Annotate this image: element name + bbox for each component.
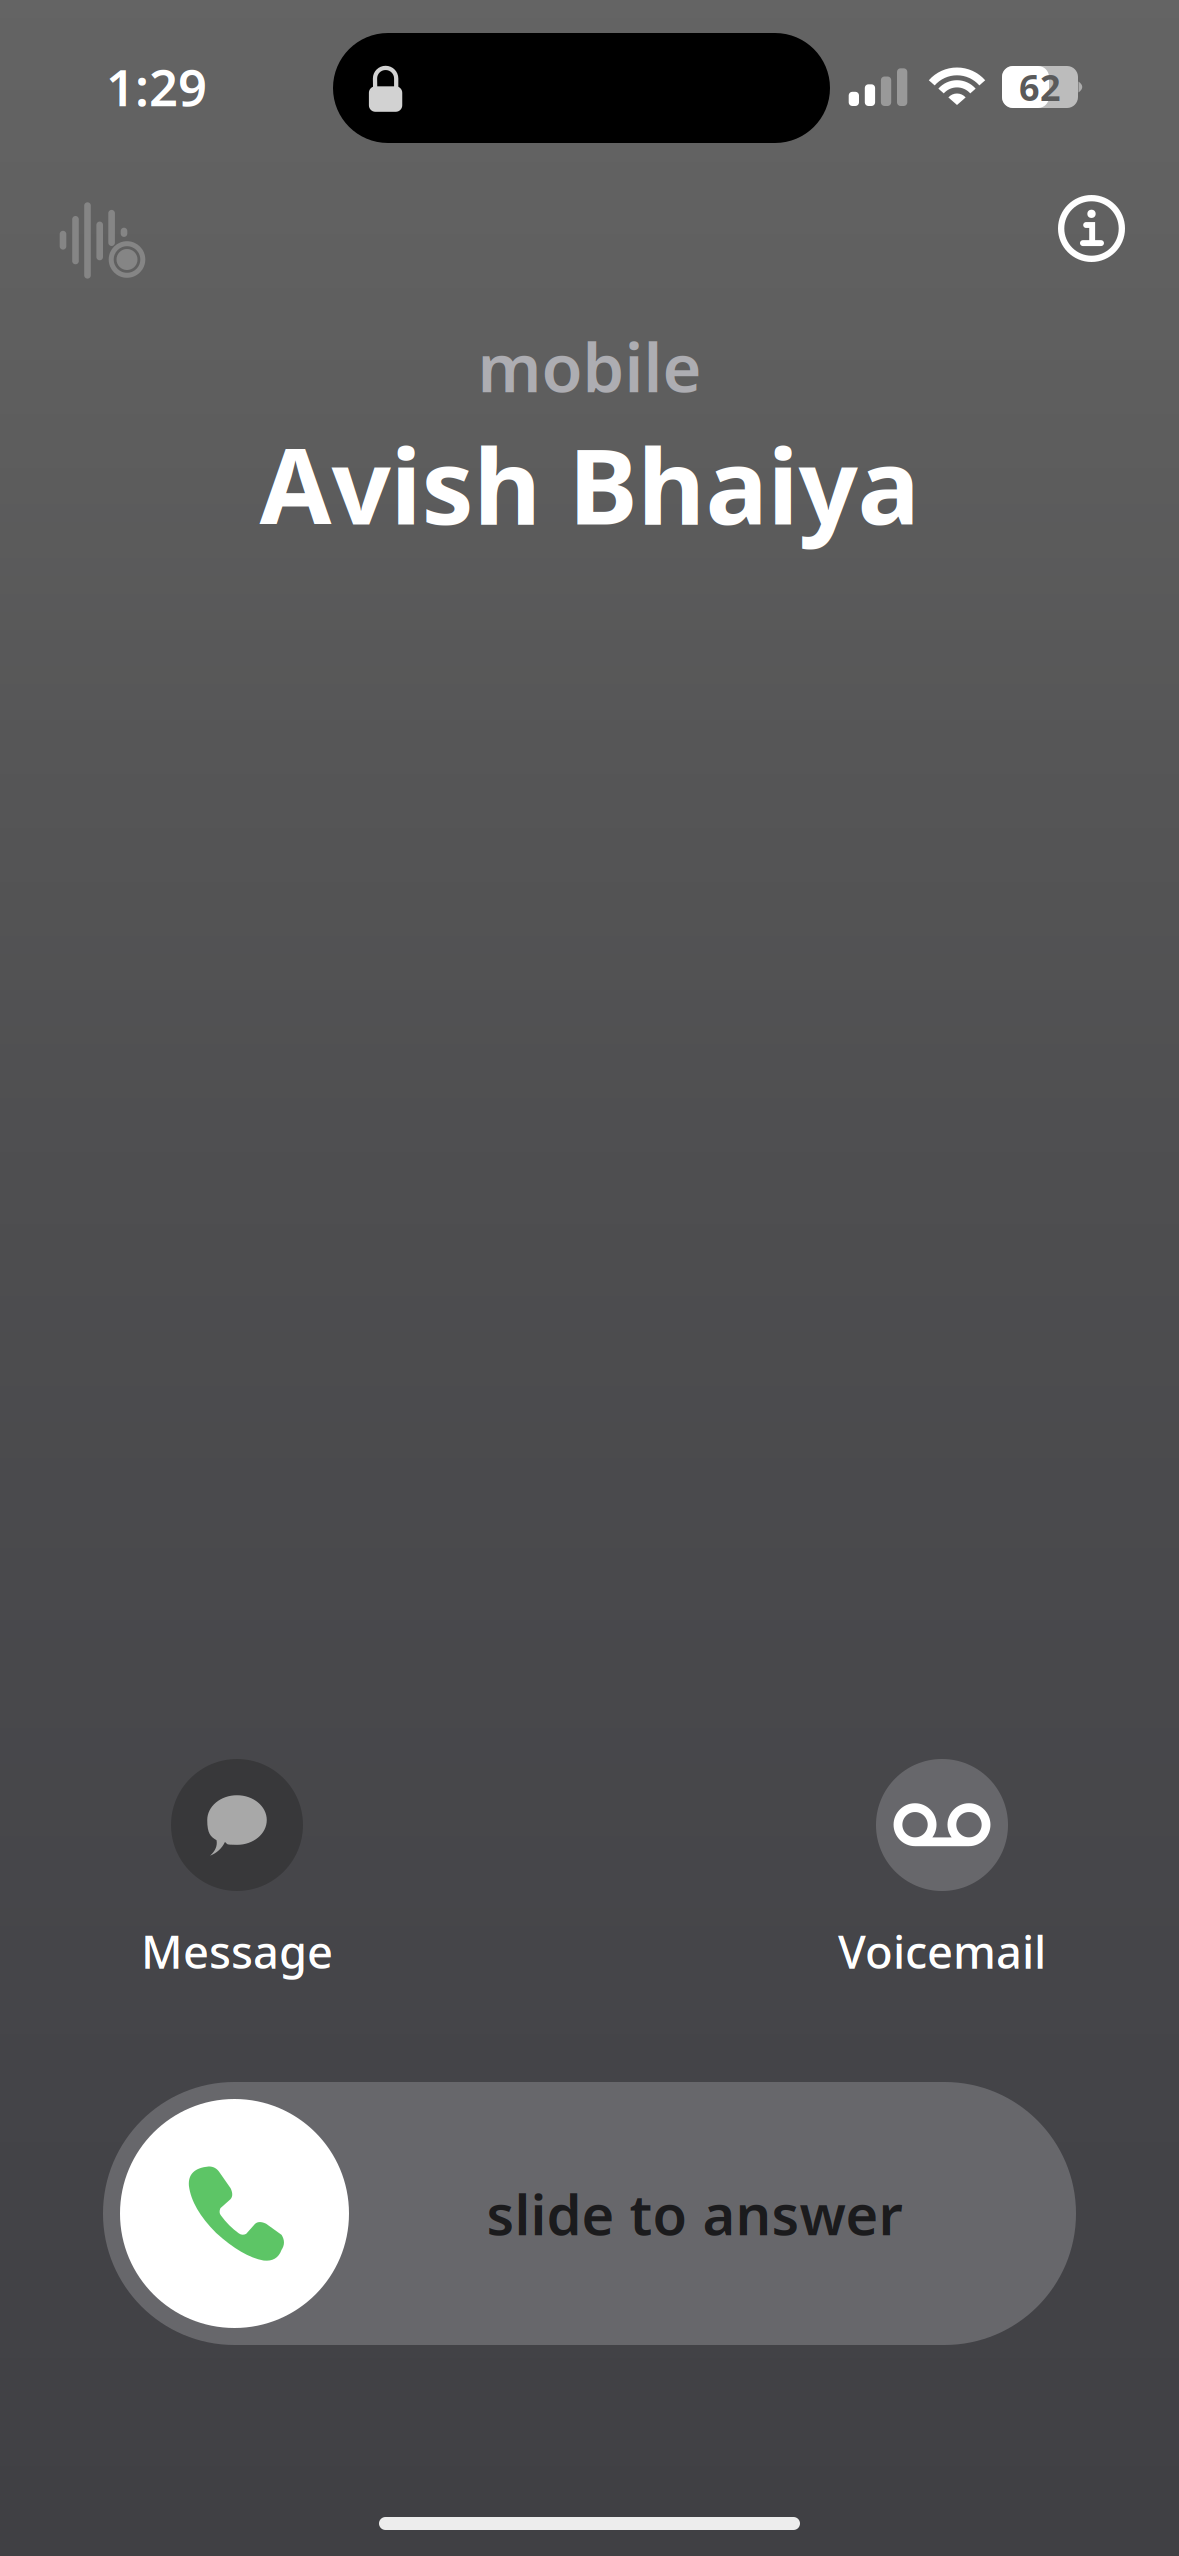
button[interactable]: Message	[97, 1759, 377, 1981]
staticText: mobile	[477, 322, 701, 410]
staticText: Message	[141, 1921, 333, 1981]
button[interactable]: slide to answer	[103, 2082, 1076, 2345]
staticText: Voicemail	[838, 1921, 1046, 1981]
staticText: 62	[1019, 63, 1061, 111]
staticText: 1:29	[106, 53, 207, 120]
staticText: Avish Bhaiya	[259, 415, 919, 553]
button[interactable]: Call details	[1032, 169, 1151, 288]
staticText: slide to answer	[486, 2176, 902, 2251]
button[interactable]: Voicemail	[802, 1759, 1082, 1981]
